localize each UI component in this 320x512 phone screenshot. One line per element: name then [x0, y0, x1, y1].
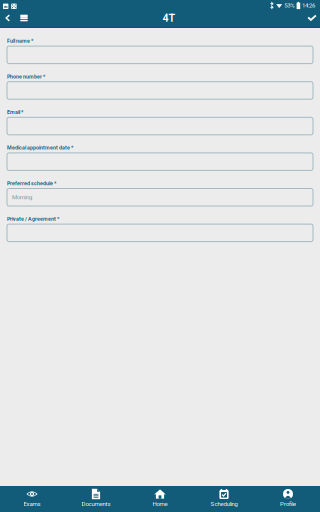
staticText: Exams [23, 500, 40, 507]
button[interactable]: Scheduling [192, 486, 256, 512]
staticText: 53% [284, 2, 294, 9]
button[interactable]: Save [304, 9, 320, 27]
staticText: Preferred schedule * [7, 180, 56, 186]
staticText: Private / Agreement * [7, 216, 59, 222]
staticText: 4T [162, 12, 175, 24]
staticText: Medical appointment date * [7, 145, 73, 151]
staticText: Morning [12, 194, 32, 201]
button[interactable]: Back [1, 9, 14, 27]
button[interactable] [7, 82, 313, 99]
button[interactable]: Profile [256, 486, 320, 512]
button[interactable]: Menu [14, 9, 34, 27]
button[interactable] [7, 224, 313, 242]
button[interactable]: Home [128, 486, 192, 512]
button[interactable] [7, 46, 313, 64]
staticText: 14:26 [302, 2, 315, 9]
staticText: Email * [7, 109, 23, 115]
staticText: Full name * [7, 38, 33, 44]
staticText: Scheduling [210, 500, 237, 507]
button[interactable] [7, 153, 313, 170]
staticText: Phone number * [7, 73, 45, 80]
button[interactable]: Documents [64, 486, 128, 512]
staticText: Home [152, 500, 167, 507]
staticText: Profile [280, 500, 296, 507]
button[interactable]: Exams [0, 486, 64, 512]
button[interactable]: Morning [7, 188, 313, 206]
staticText: Documents [81, 500, 110, 507]
button[interactable] [7, 117, 313, 135]
